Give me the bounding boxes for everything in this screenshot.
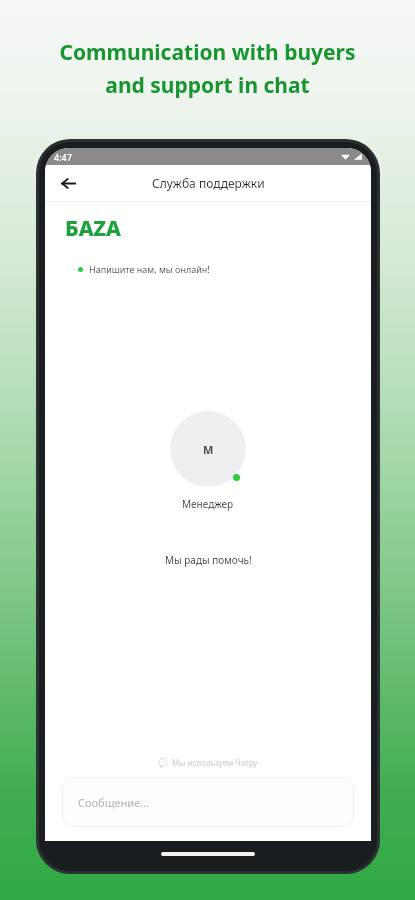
staticText: and support in chat: [105, 71, 310, 100]
staticText: 4:47: [54, 151, 72, 163]
staticText: Сообщение...: [78, 795, 150, 810]
staticText: БАZA: [65, 214, 121, 243]
staticText: Менеджер: [182, 497, 234, 511]
staticText: М: [203, 442, 214, 457]
button[interactable]: Сообщение...: [62, 777, 354, 827]
staticText: Служба поддержки: [152, 175, 265, 191]
staticText: Мы рады помочь!: [165, 553, 252, 567]
staticText: Communication with buyers: [59, 38, 356, 67]
staticText: Напишите нам, мы онлайн!: [89, 263, 210, 275]
button[interactable]: Back: [51, 166, 85, 200]
staticText: Мы используем Чатру: [172, 757, 258, 768]
